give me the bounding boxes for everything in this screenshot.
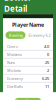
staticText: Maidens [7, 52, 22, 57]
staticText: Dot Balls [7, 84, 23, 89]
staticText: Economy 6.2 [28, 32, 50, 38]
staticText: 25 [45, 60, 49, 65]
staticText: 4.0 [44, 44, 49, 49]
staticText: Bowler Detail [4, 0, 32, 14]
staticText: Overs [7, 44, 18, 49]
staticText: 11 [45, 84, 49, 89]
staticText: 2 [47, 68, 49, 73]
staticText: Wickets [7, 68, 21, 73]
staticText: Save Changes [16, 98, 40, 100]
staticText: Player Name [12, 21, 44, 28]
staticText: Bowling [8, 32, 22, 38]
staticText: 6.25 [42, 76, 49, 81]
staticText: 0 [47, 52, 49, 57]
staticText: Runs [7, 60, 15, 65]
button[interactable]: Save Changes [15, 98, 41, 100]
staticText: Economy [7, 76, 23, 81]
